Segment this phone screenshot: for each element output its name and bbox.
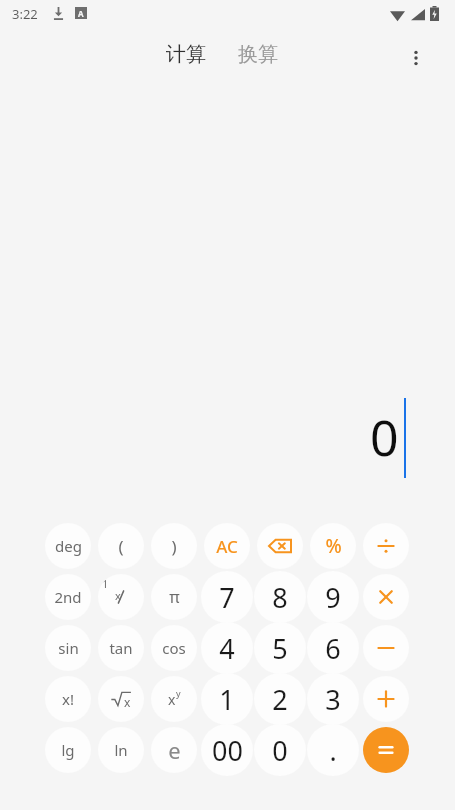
button[interactable]: 3: [307, 673, 359, 725]
staticText: 0: [370, 403, 399, 471]
button[interactable]: (: [98, 523, 144, 569]
button[interactable]: 2nd: [45, 574, 91, 620]
button[interactable]: e: [151, 727, 197, 773]
staticText: 2: [272, 681, 288, 718]
button[interactable]: Equals: [363, 727, 409, 773]
staticText: 00: [212, 732, 243, 769]
button[interactable]: sin: [45, 625, 91, 671]
button[interactable]: x to the power y: [151, 676, 197, 722]
staticText: AC: [216, 535, 238, 558]
staticText: 3: [325, 681, 341, 718]
button[interactable]: Multiply: [363, 574, 409, 620]
button[interactable]: Square root: [98, 676, 144, 722]
button[interactable]: 1: [201, 673, 253, 725]
staticText: (: [118, 535, 124, 558]
button[interactable]: lg: [45, 727, 91, 773]
button[interactable]: One over x: [98, 574, 144, 620]
staticText: 3:22: [12, 5, 38, 23]
button[interactable]: cos: [151, 625, 197, 671]
button[interactable]: 7: [201, 571, 253, 623]
staticText: 5: [272, 630, 288, 667]
button[interactable]: 0: [254, 724, 306, 776]
staticText: x!: [62, 689, 74, 709]
button[interactable]: ): [151, 523, 197, 569]
staticText: ): [171, 535, 177, 558]
staticText: 2nd: [54, 587, 82, 607]
staticText: tan: [109, 638, 133, 658]
staticText: cos: [162, 638, 186, 658]
staticText: y: [176, 687, 181, 699]
button[interactable]: %: [310, 523, 356, 569]
staticText: lg: [61, 740, 75, 760]
staticText: deg: [55, 536, 82, 556]
button[interactable]: 2: [254, 673, 306, 725]
staticText: π: [169, 586, 180, 608]
staticText: e: [168, 735, 181, 765]
button[interactable]: deg: [45, 523, 91, 569]
staticText: 8: [272, 579, 288, 616]
staticText: .: [329, 732, 337, 769]
button[interactable]: More options: [396, 38, 436, 78]
button[interactable]: Minus: [363, 625, 409, 671]
staticText: x: [124, 694, 131, 710]
button[interactable]: 6: [307, 622, 359, 674]
button[interactable]: 5: [254, 622, 306, 674]
staticText: sin: [58, 638, 79, 658]
staticText: A: [78, 8, 84, 19]
button[interactable]: π: [151, 574, 197, 620]
staticText: 4: [219, 630, 235, 667]
staticText: %: [325, 533, 342, 559]
staticText: 9: [325, 579, 341, 616]
staticText: 0: [272, 732, 288, 769]
staticText: 7: [219, 579, 235, 616]
staticText: 6: [325, 630, 341, 667]
button[interactable]: 计算: [166, 42, 206, 67]
button[interactable]: tan: [98, 625, 144, 671]
button[interactable]: 9: [307, 571, 359, 623]
button[interactable]: ln: [98, 727, 144, 773]
button[interactable]: x!: [45, 676, 91, 722]
staticText: ln: [114, 740, 128, 760]
button[interactable]: Plus: [363, 676, 409, 722]
button[interactable]: .: [307, 724, 359, 776]
staticText: 计算: [166, 42, 206, 67]
button[interactable]: Divide: [363, 523, 409, 569]
button[interactable]: 换算: [238, 42, 278, 67]
button[interactable]: 4: [201, 622, 253, 674]
button[interactable]: Backspace: [257, 523, 303, 569]
button[interactable]: 8: [254, 571, 306, 623]
staticText: 1: [219, 681, 235, 718]
staticText: x: [115, 588, 121, 603]
staticText: 1: [102, 576, 109, 591]
staticText: x: [168, 690, 176, 709]
staticText: 换算: [238, 42, 278, 67]
button[interactable]: 00: [201, 724, 253, 776]
button[interactable]: AC: [204, 523, 250, 569]
